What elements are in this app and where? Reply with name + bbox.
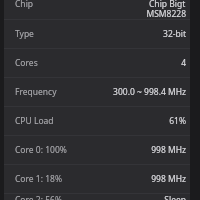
staticText: 998 MHz	[151, 173, 186, 185]
button[interactable]: Frequency	[4, 78, 190, 106]
staticText: 998 MHz	[151, 144, 186, 156]
staticText: Cores	[15, 57, 38, 69]
staticText: 61%	[169, 115, 186, 127]
button[interactable]: CPU Load	[4, 107, 190, 135]
staticText: Type	[15, 28, 34, 40]
staticText: 300.0 ~ 998.4 MHz	[113, 86, 186, 98]
staticText: MSM8228	[146, 8, 186, 20]
button[interactable]: Cores	[4, 49, 190, 77]
staticText: CPU Load	[15, 115, 54, 127]
button[interactable]: Chip	[4, 0, 190, 19]
button[interactable]: Core 0: 100%	[4, 136, 190, 164]
button[interactable]: Type	[4, 20, 190, 48]
staticText: Core 1: 18%	[15, 173, 62, 185]
staticText: Frequency	[15, 86, 57, 98]
staticText: Core 2: 56%	[15, 194, 62, 200]
staticText: Chip Bigt	[149, 0, 186, 10]
staticText: 32-bit	[163, 28, 186, 40]
staticText: Sleep	[164, 194, 186, 200]
button[interactable]: Core 1: 18%	[4, 165, 190, 193]
staticText: Chip	[15, 0, 34, 10]
button[interactable]: Core 2: 56%	[4, 194, 190, 200]
staticText: 4	[181, 57, 186, 69]
staticText: Core 0: 100%	[15, 144, 67, 156]
